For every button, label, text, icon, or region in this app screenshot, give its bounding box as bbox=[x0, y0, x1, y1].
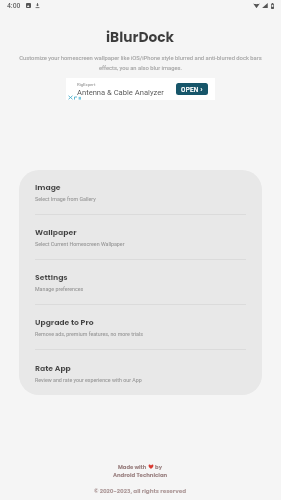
staticText: Review and rate your experience with our… bbox=[35, 377, 142, 383]
staticText: © 2020-2023, all rights reserved bbox=[94, 487, 187, 495]
button[interactable]: Rate App bbox=[19, 350, 262, 395]
button[interactable]: Close ad bbox=[68, 95, 73, 100]
staticText: by bbox=[154, 463, 163, 470]
staticText: Select Current Homescreen Wallpaper bbox=[35, 241, 125, 247]
button[interactable]: Wallpaper bbox=[19, 215, 262, 260]
staticText: Antenna & Cable Analyzer bbox=[77, 88, 164, 97]
staticText: Customize your homescreen wallpaper like… bbox=[17, 55, 264, 71]
staticText: OPEN › bbox=[181, 86, 203, 93]
staticText: Wallpaper bbox=[35, 227, 77, 238]
staticText: RigExpert bbox=[77, 82, 96, 87]
staticText: Manage preferences bbox=[35, 286, 84, 292]
staticText: Rate App bbox=[35, 363, 71, 374]
staticText: Made with bbox=[118, 463, 148, 470]
button[interactable]: Upgrade to Pro bbox=[19, 305, 262, 350]
button[interactable]: Settings bbox=[19, 260, 262, 305]
button[interactable]: OPEN › bbox=[176, 83, 208, 95]
staticText: Select Image from Gallery bbox=[35, 196, 96, 202]
staticText: 4:00 bbox=[7, 2, 21, 10]
staticText: Android Technician bbox=[113, 471, 168, 479]
staticText: Image bbox=[35, 182, 61, 193]
button[interactable]: Image bbox=[19, 170, 262, 215]
staticText: Remove ads, premium features, no more tr… bbox=[35, 331, 143, 337]
staticText: Upgrade to Pro bbox=[35, 317, 94, 328]
staticText: Settings bbox=[35, 272, 68, 283]
staticText: iBlurDock bbox=[106, 28, 175, 47]
